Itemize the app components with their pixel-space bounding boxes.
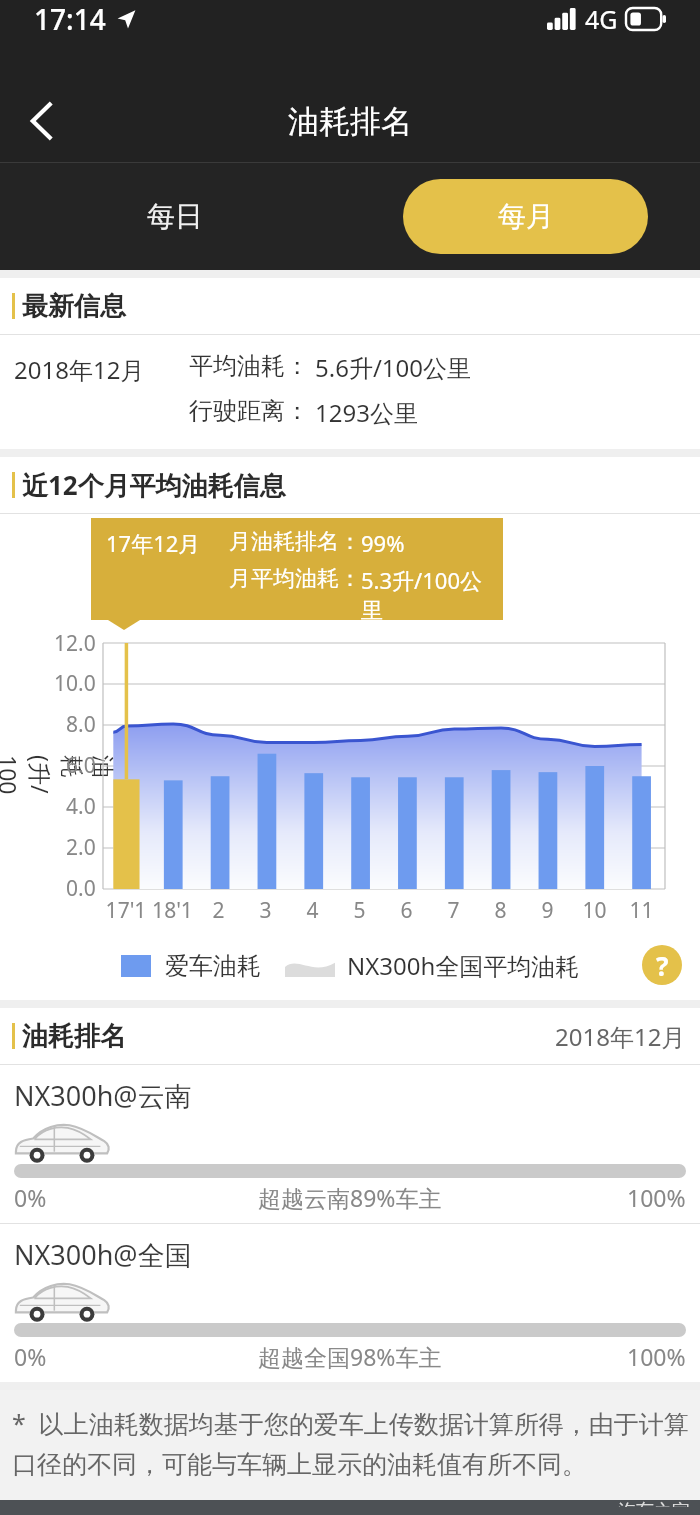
staticText: 超越全国98%车主 [258, 1341, 442, 1372]
button[interactable]: NX300h@云南 [0, 1065, 700, 1223]
staticText: 4 [306, 896, 319, 925]
staticText: 月平均油耗： [229, 565, 361, 593]
staticText: 5.3升/100公里 [361, 565, 503, 620]
button[interactable]: Help [642, 945, 682, 985]
staticText: 2 [212, 896, 225, 925]
button[interactable]: NX300h@全国 [0, 1224, 700, 1382]
staticText: ? [656, 948, 669, 983]
staticText: 8.0 [66, 710, 96, 739]
staticText: 17:14 [34, 0, 106, 38]
staticText: 0% [14, 1341, 47, 1372]
staticText: 10 [582, 896, 607, 925]
staticText: 行驶距离： [189, 396, 309, 426]
button[interactable]: Back [10, 89, 74, 153]
staticText: 17'12 [103, 896, 149, 930]
staticText: 0.0 [66, 874, 96, 903]
staticText: 汽车之家 [618, 1500, 690, 1507]
staticText: 最新信息 [22, 290, 126, 323]
staticText: 1293公里 [315, 396, 418, 429]
staticText: 超越云南89%车主 [258, 1182, 442, 1213]
staticText: 4G [585, 2, 618, 36]
staticText: NX300h@全国 [14, 1236, 192, 1273]
staticText: 0% [14, 1182, 47, 1213]
staticText: 每日 [147, 199, 203, 234]
button[interactable]: 每月 [403, 179, 648, 254]
staticText: 9 [541, 896, 554, 925]
staticText: 5.6升/100公里 [315, 351, 471, 384]
staticText: 6.0 [66, 751, 96, 780]
staticText: 2018年12月 [555, 1020, 686, 1053]
staticText: 爱车油耗 [165, 951, 261, 981]
staticText: 4.0 [66, 792, 96, 821]
staticText: 油耗排名 [22, 1020, 126, 1053]
staticText: 100% [627, 1341, 686, 1372]
button[interactable]: 每日 [0, 163, 350, 270]
staticText: 5 [353, 896, 366, 925]
staticText: 2.0 [66, 833, 96, 862]
staticText: 油耗(升/100公里) [0, 755, 117, 795]
staticText: 10.0 [54, 669, 96, 698]
staticText: 每月 [498, 199, 554, 234]
staticText: 8 [494, 896, 507, 925]
staticText: 3 [259, 896, 272, 925]
staticText: 17年12月 [106, 528, 201, 558]
staticText: 18'1 [152, 896, 193, 925]
staticText: 2018年12月 [14, 353, 145, 386]
staticText: NX300h@云南 [14, 1077, 192, 1114]
staticText: 12.0 [54, 629, 96, 658]
staticText: 100% [627, 1182, 686, 1213]
staticText: * 以上油耗数据均基于您的爱车上传数据计算所得，由于计算口径的不同，可能与车辆上… [12, 1406, 692, 1480]
staticText: 平均油耗： [189, 351, 309, 381]
staticText: 近12个月平均油耗信息 [22, 467, 286, 503]
staticText: 7 [447, 896, 460, 925]
staticText: 6 [400, 896, 413, 925]
staticText: 11 [629, 896, 654, 925]
staticText: 月油耗排名： [229, 528, 361, 556]
staticText: NX300h全国平均油耗 [347, 949, 580, 982]
staticText: 99% [361, 528, 405, 558]
staticText: 油耗排名 [288, 102, 412, 141]
